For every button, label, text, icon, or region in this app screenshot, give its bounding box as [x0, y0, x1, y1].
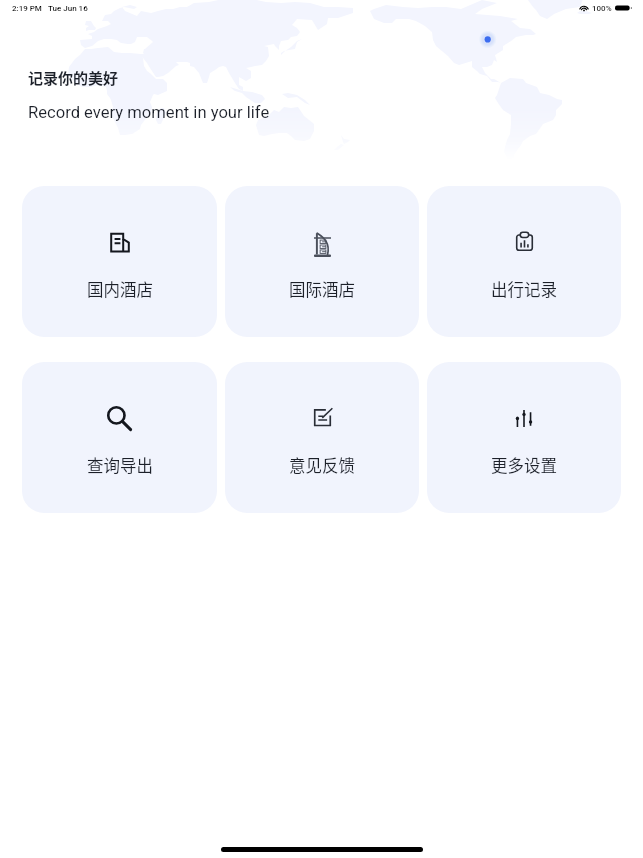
staticText: 出行记录 [491, 277, 557, 301]
staticText: 意见反馈 [289, 453, 355, 477]
button[interactable]: 国内酒店 [22, 186, 217, 337]
button[interactable]: 出行记录 [427, 186, 621, 337]
staticText: 查询导出 [87, 453, 153, 477]
button[interactable]: 查询导出 [22, 362, 217, 513]
button[interactable]: 意见反馈 [225, 362, 419, 513]
staticText: Tue Jun 16 [48, 4, 88, 13]
button[interactable]: 国际酒店 [225, 186, 419, 337]
staticText: 国际酒店 [289, 277, 355, 301]
staticText: 2:19 PM [12, 4, 42, 13]
staticText: Record every moment in your life [28, 103, 270, 122]
staticText: 国内酒店 [87, 277, 153, 301]
other: Wi-Fi [579, 4, 589, 12]
other: Battery 100 percent [615, 4, 632, 12]
staticText: 100% [592, 4, 612, 13]
staticText: 更多设置 [491, 453, 557, 477]
staticText: 记录你的美好 [28, 67, 119, 89]
button[interactable]: 更多设置 [427, 362, 621, 513]
